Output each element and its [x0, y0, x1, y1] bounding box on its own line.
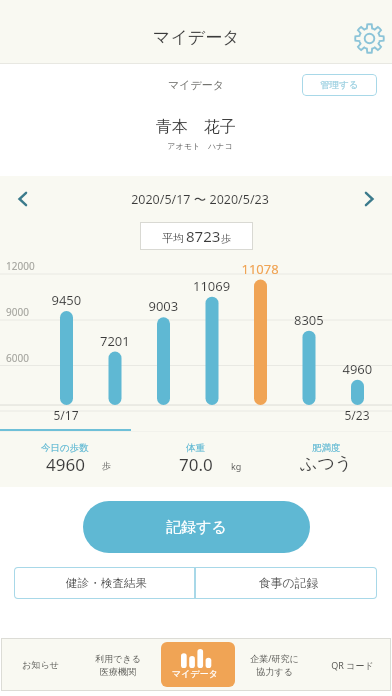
- button[interactable]: 記録する: [83, 501, 310, 553]
- staticText: 青本 花子: [0, 115, 392, 137]
- button[interactable]: 企業/研究に 協力する: [235, 638, 313, 691]
- staticText: マイデータ: [153, 27, 240, 48]
- staticText: アオモト ハナコ: [4, 140, 392, 151]
- staticText: 歩: [102, 460, 111, 471]
- staticText: 歩: [221, 232, 231, 245]
- staticText: QR コード: [331, 659, 374, 671]
- staticText: kg: [231, 460, 242, 472]
- button[interactable]: 利用できる 医療機関: [79, 638, 157, 691]
- staticText: 70.0: [179, 453, 213, 476]
- staticText: マイデータ: [0, 78, 392, 92]
- staticText: 管理する: [320, 79, 359, 91]
- button[interactable]: Next week: [351, 181, 387, 217]
- staticText: 肥満度: [312, 442, 341, 454]
- staticText: 今日の歩数: [41, 442, 89, 454]
- staticText: 2020/5/17 〜 2020/5/23: [4, 191, 392, 208]
- button[interactable]: QR コード: [313, 638, 391, 691]
- button[interactable]: マイデータ: [161, 642, 235, 687]
- staticText: ふつう: [300, 453, 353, 474]
- staticText: 健診・検査結果: [66, 576, 148, 591]
- staticText: 8723: [186, 226, 221, 246]
- button[interactable]: Previous week: [5, 181, 41, 217]
- button[interactable]: 食事の記録: [195, 567, 377, 599]
- button[interactable]: お知らせ: [1, 638, 79, 691]
- staticText: 食事の記録: [259, 576, 319, 591]
- staticText: 平均: [162, 231, 184, 245]
- staticText: 4960: [46, 453, 85, 476]
- button[interactable]: 健診・検査結果: [14, 567, 195, 599]
- staticText: 記録する: [166, 518, 227, 537]
- staticText: マイデータ: [172, 668, 218, 679]
- button[interactable]: 管理する: [302, 74, 377, 96]
- staticText: 体重: [186, 442, 205, 454]
- button[interactable]: Settings: [354, 23, 392, 63]
- staticText: お知らせ: [22, 659, 59, 670]
- staticText: 利用できる 医療機関: [95, 653, 141, 677]
- staticText: 企業/研究に 協力する: [250, 652, 299, 677]
